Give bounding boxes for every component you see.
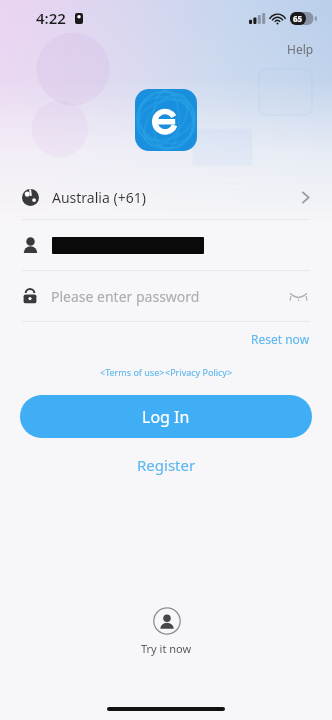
other: App logo — [135, 89, 197, 151]
button[interactable]: <Privacy Policy> — [165, 366, 233, 378]
staticText: <Privacy Policy> — [165, 366, 233, 378]
staticText: 4:22 — [36, 8, 66, 28]
button[interactable]: Help — [281, 39, 320, 59]
button[interactable]: <Terms of use> — [100, 366, 165, 378]
button[interactable]: Please enter password — [0, 271, 332, 321]
staticText: Australia (+61) — [52, 188, 146, 207]
button[interactable] — [0, 220, 332, 270]
button[interactable]: Log In — [20, 395, 312, 438]
staticText: Please enter password — [51, 287, 200, 306]
staticText: Register — [137, 455, 196, 475]
staticText: Log In — [142, 406, 190, 428]
button[interactable]: Show password — [286, 284, 310, 308]
staticText: Try it now — [141, 641, 192, 656]
staticText: 65 — [293, 13, 303, 24]
staticText: Reset now — [251, 331, 310, 347]
button[interactable]: Register — [127, 452, 206, 478]
staticText: <Terms of use> — [100, 366, 165, 378]
button[interactable]: Australia (+61) — [0, 175, 332, 219]
button[interactable]: Reset now — [247, 329, 314, 349]
button[interactable]: Try it now — [127, 603, 206, 660]
staticText: Help — [287, 41, 314, 57]
